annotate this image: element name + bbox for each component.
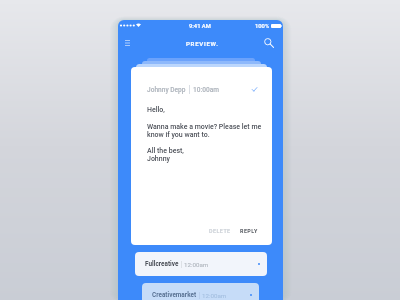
staticText: All the best, Johnny — [147, 147, 184, 163]
button[interactable]: DELETE — [206, 225, 234, 237]
staticText: Wanna make a movie? Please let me know i… — [147, 123, 262, 139]
button[interactable]: Creativemarket — [142, 283, 259, 300]
staticText: PREVIEW. — [186, 40, 219, 47]
staticText: 12:00am — [184, 261, 209, 268]
button[interactable]: Fullcreative — [135, 252, 267, 276]
staticText: 9:41 AM — [189, 23, 211, 30]
staticText: Creativemarket — [152, 291, 197, 299]
button[interactable]: Menu — [120, 35, 134, 49]
staticText: DELETE — [209, 228, 231, 234]
button[interactable]: Search — [261, 35, 276, 50]
staticText: 10:00am — [193, 86, 220, 94]
button[interactable]: REPLY — [237, 225, 261, 237]
staticText: 12:00am — [202, 292, 227, 299]
staticText: 100% — [255, 23, 270, 30]
staticText: REPLY — [240, 228, 258, 234]
staticText: Hello, — [147, 106, 165, 114]
staticText: Fullcreative — [145, 260, 179, 268]
staticText: Johnny Depp — [147, 86, 186, 94]
